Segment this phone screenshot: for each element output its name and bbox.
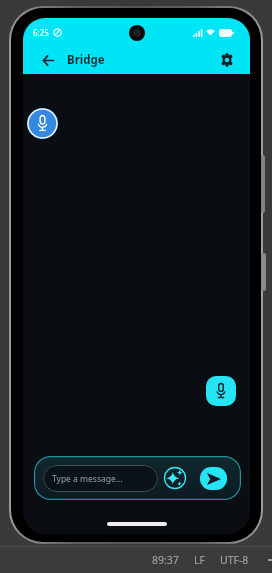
staticText: UTF-8 [220, 553, 249, 567]
button[interactable] [38, 50, 58, 70]
staticText: 89:37 [152, 553, 179, 567]
button[interactable] [200, 467, 227, 490]
button[interactable] [27, 108, 58, 139]
button[interactable]: Type a message... [43, 465, 158, 492]
staticText: LF [194, 553, 205, 567]
staticText: Type a message... [52, 473, 123, 485]
button[interactable] [206, 376, 236, 406]
staticText: Bridge [67, 52, 105, 68]
button[interactable] [216, 49, 238, 71]
button[interactable] [163, 466, 187, 490]
staticText: 6:25 [33, 27, 49, 38]
